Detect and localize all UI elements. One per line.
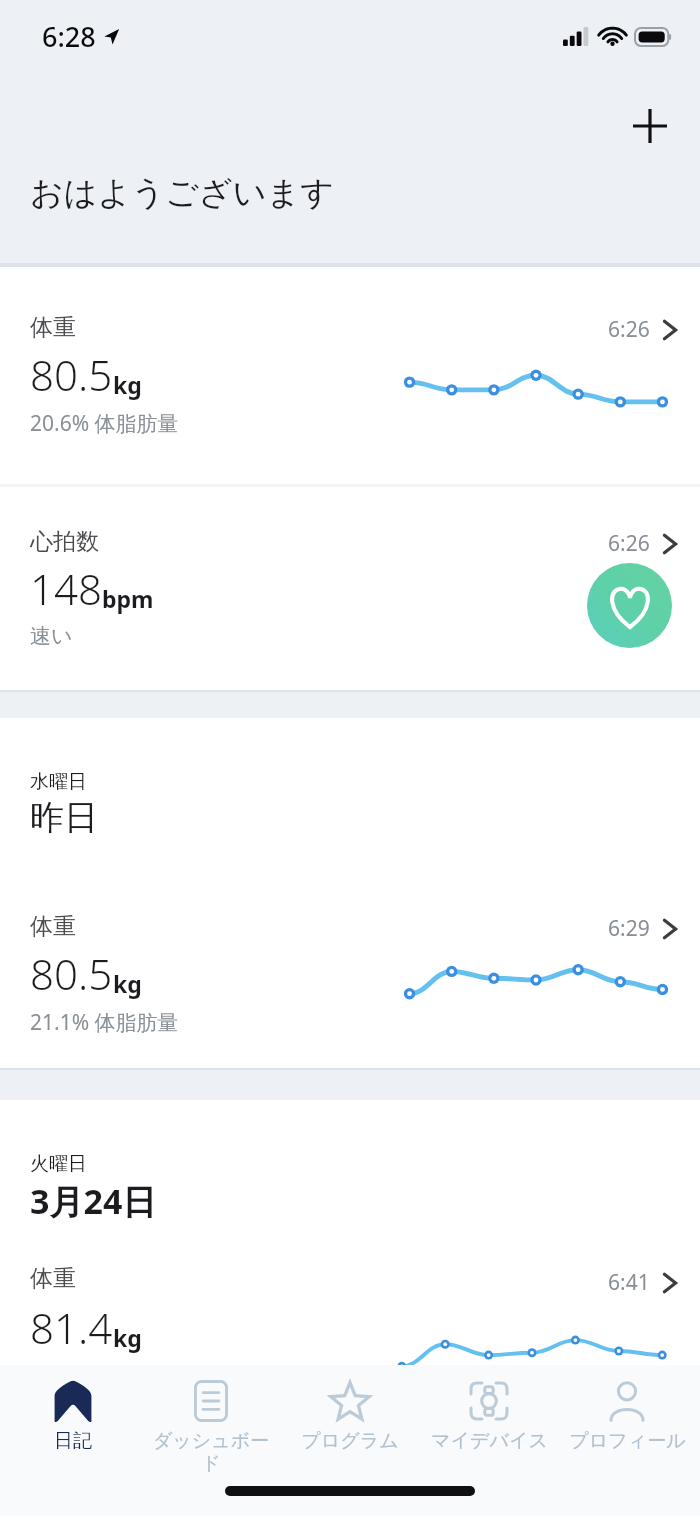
staticText: 火曜日 (30, 1152, 87, 1176)
staticText: 6:26 (608, 315, 650, 344)
button[interactable]: 体重 (0, 866, 700, 1068)
button[interactable]: Add (622, 98, 678, 154)
staticText: kg (113, 369, 142, 400)
staticText: 80.5 (30, 945, 113, 1002)
button[interactable]: 心拍数 (0, 487, 700, 690)
staticText: 日記 (54, 1429, 92, 1453)
staticText: 81.4 (30, 1299, 113, 1356)
staticText: 体重 (30, 1264, 76, 1293)
staticText: 体重 (30, 313, 76, 342)
button[interactable]: マイデバイス (423, 1373, 555, 1457)
staticText: 心拍数 (30, 527, 99, 556)
button[interactable]: 日記 (7, 1373, 139, 1457)
staticText: 体重 (30, 912, 76, 941)
staticText: マイデバイス (431, 1429, 548, 1453)
staticText: kg (113, 968, 142, 999)
staticText: 20.6% 体脂肪量 (30, 409, 179, 438)
staticText: 6:26 (608, 529, 650, 558)
staticText: 80.5 (30, 346, 113, 403)
staticText: ダッシュボード (145, 1429, 277, 1475)
staticText: 6:28 (42, 18, 96, 55)
button[interactable]: プロフィール (561, 1373, 693, 1457)
staticText: プロフィール (569, 1429, 686, 1453)
staticText: 3月24日 (30, 1178, 157, 1224)
staticText: 6:29 (608, 914, 650, 943)
staticText: 昨日 (30, 796, 98, 839)
button[interactable]: ダッシュボード (145, 1373, 277, 1479)
staticText: bpm (102, 583, 154, 614)
staticText: 6:41 (608, 1268, 650, 1297)
staticText: 21.1% 体脂肪量 (30, 1008, 179, 1037)
staticText: プログラム (301, 1429, 399, 1453)
staticText: 水曜日 (30, 770, 87, 794)
button[interactable]: 体重 (0, 1252, 700, 1374)
staticText: おはようございます (30, 172, 334, 214)
button[interactable]: プログラム (284, 1373, 416, 1457)
staticText: kg (113, 1322, 142, 1353)
staticText: 148 (30, 560, 102, 617)
button[interactable]: 体重 (0, 267, 700, 484)
staticText: 速い (30, 623, 73, 649)
